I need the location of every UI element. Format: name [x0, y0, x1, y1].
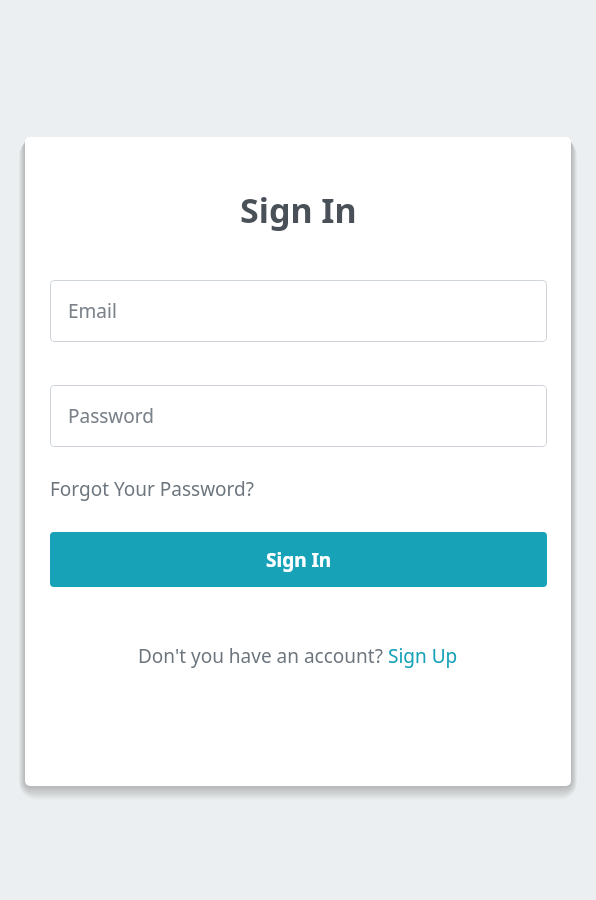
button[interactable]: Forgot Your Password?: [50, 473, 255, 505]
staticText: Sign Up: [388, 643, 458, 669]
staticText: Sign In: [266, 547, 332, 573]
staticText: Email: [68, 298, 117, 324]
staticText: Password: [68, 403, 154, 429]
staticText: Forgot Your Password?: [50, 476, 255, 502]
staticText: Don't you have an account?: [138, 643, 388, 669]
button[interactable]: Email: [50, 280, 547, 342]
staticText: Sign In: [240, 187, 357, 233]
button[interactable]: Password: [50, 385, 547, 447]
button[interactable]: Sign In: [50, 532, 547, 587]
button[interactable]: Sign Up: [388, 643, 458, 669]
